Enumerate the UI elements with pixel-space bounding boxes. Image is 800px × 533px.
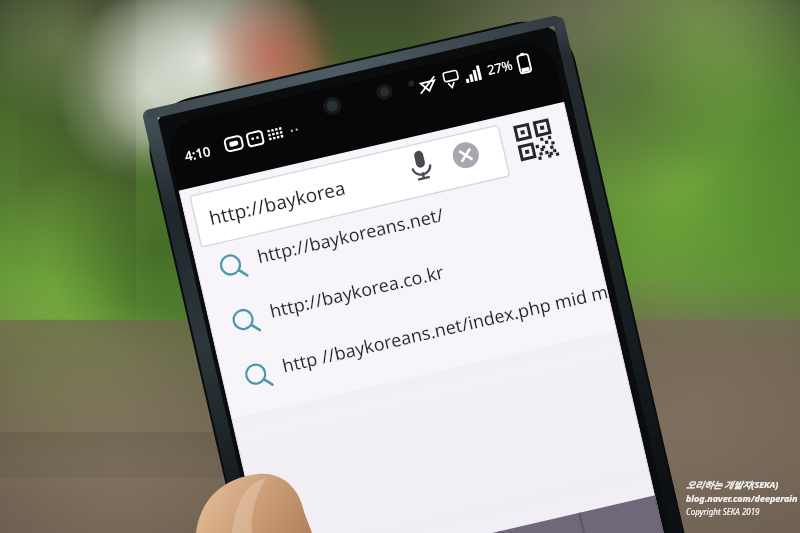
- button[interactable]: Clear text: [518, 92, 554, 128]
- button[interactable]: Voice search: [480, 96, 518, 134]
- button[interactable]: http //baykoreans.net/index.php mid movi…: [244, 286, 614, 332]
- button[interactable]: Scan QR code: [560, 82, 594, 116]
- button[interactable]: Address bar, http://baykorea: [214, 150, 544, 192]
- button[interactable]: http://baykoreans.net/: [228, 196, 588, 240]
- button[interactable]: http://baykorea.co.kr: [236, 240, 596, 284]
- button[interactable]: Phone showing browser search suggestions: [0, 0, 800, 533]
